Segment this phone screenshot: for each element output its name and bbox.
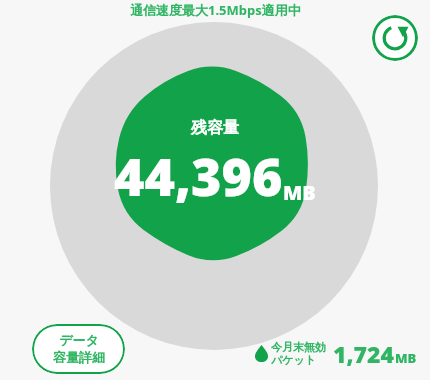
staticText: 44,396	[114, 140, 283, 211]
staticText: データ 容量詳細	[53, 332, 105, 366]
staticText: 1,724	[333, 338, 395, 369]
staticText: 残容量	[191, 118, 239, 138]
staticText: 今月末無効 パケット	[271, 340, 326, 367]
button[interactable]: Refresh	[372, 15, 418, 61]
staticText: MB	[395, 349, 417, 367]
staticText: 通信速度最大1.5Mbps適用中	[130, 1, 301, 19]
button[interactable]: データ 容量詳細	[32, 324, 125, 374]
staticText: MB	[283, 179, 316, 206]
button[interactable]: 今月末無効 パケット	[255, 338, 417, 369]
